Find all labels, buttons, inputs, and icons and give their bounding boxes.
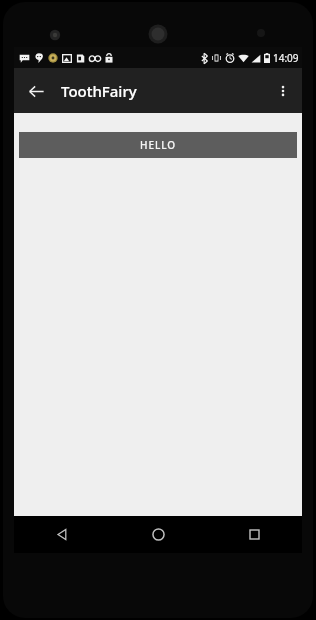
button[interactable]: Back (14, 516, 110, 553)
staticText: HELLO (140, 138, 176, 152)
button[interactable]: HELLO (19, 132, 297, 158)
staticText: ToothFairy (61, 81, 137, 101)
button[interactable]: Navigate up (19, 74, 53, 108)
button[interactable]: Home (110, 516, 206, 553)
staticText: 14:09 (273, 51, 299, 65)
button[interactable]: Recent apps (206, 516, 302, 553)
button[interactable]: More options (267, 75, 299, 107)
